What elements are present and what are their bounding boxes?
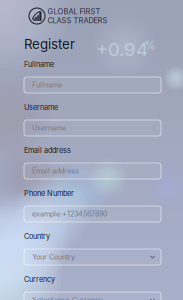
staticText: Your Country: [32, 253, 75, 261]
button[interactable]: Your Country: [24, 249, 161, 265]
staticText: +0.94: [96, 38, 148, 61]
staticText: Username: [32, 124, 66, 132]
staticText: %: [144, 38, 156, 52]
button[interactable]: Username: [24, 120, 161, 136]
staticText: Country: [24, 232, 50, 241]
staticText: example:+1234567890: [32, 210, 108, 218]
staticText: Fullname: [24, 60, 54, 69]
staticText: Select your Currency: [32, 296, 103, 300]
button[interactable]: Fullname: [24, 77, 161, 93]
staticText: Register: [24, 36, 75, 52]
staticText: GLOBAL FIRST: [47, 7, 100, 16]
staticText: Currency: [24, 275, 55, 284]
staticText: Email address: [32, 167, 79, 175]
button[interactable]: Select your Currency: [24, 292, 161, 300]
button[interactable]: example:+1234567890: [24, 206, 161, 222]
staticText: Username: [24, 103, 58, 112]
staticText: Email address: [24, 146, 71, 155]
staticText: CLASS TRADERS: [47, 16, 107, 25]
staticText: Fullname: [32, 81, 62, 89]
staticText: Phone Number: [24, 189, 74, 198]
button[interactable]: Email address: [24, 163, 161, 179]
